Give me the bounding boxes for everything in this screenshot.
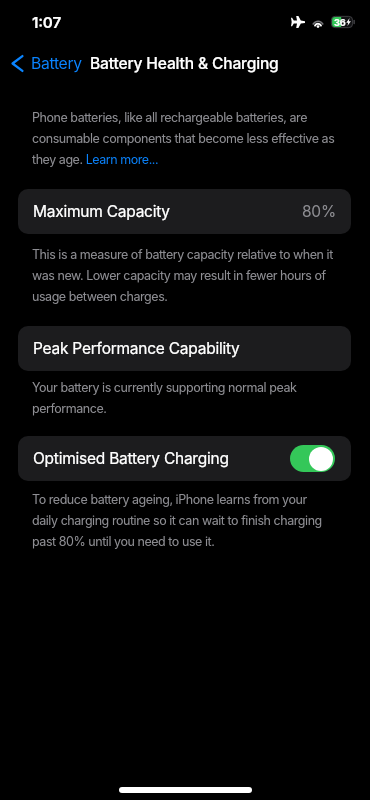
staticText: 36	[334, 17, 346, 28]
staticText: 1:07	[32, 13, 61, 31]
staticText: Battery Health & Charging	[90, 54, 279, 73]
other: Airplane mode	[291, 16, 305, 28]
staticText: To reduce battery ageing, iPhone learns …	[32, 492, 354, 549]
button[interactable]: Optimised Battery Charging toggle	[290, 445, 335, 472]
other: Wi-Fi	[312, 17, 324, 27]
staticText: Battery	[31, 54, 82, 73]
other: Battery 36 percent, charging	[331, 16, 355, 28]
staticText: Peak Performance Capability	[33, 339, 240, 358]
staticText: 80%	[302, 202, 336, 221]
button[interactable]: Maximum Capacity	[18, 189, 351, 234]
staticText: Phone batteries, like all rechargeable b…	[32, 110, 354, 167]
staticText: This is a measure of battery capacity re…	[32, 247, 354, 304]
staticText: Maximum Capacity	[33, 202, 170, 221]
button[interactable]: Optimised Battery Charging	[18, 436, 351, 481]
button[interactable]: Peak Performance Capability	[18, 326, 351, 371]
button[interactable]: Battery	[11, 54, 82, 73]
staticText: Optimised Battery Charging	[33, 449, 229, 468]
staticText: Your battery is currently supporting nor…	[32, 380, 354, 416]
